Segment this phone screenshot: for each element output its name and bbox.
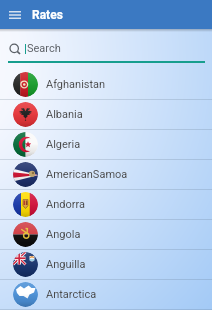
staticText: Angola	[46, 228, 81, 241]
button[interactable]: Albania	[0, 100, 212, 129]
button[interactable]: Algeria	[0, 130, 212, 159]
button[interactable]: Antarctica	[0, 280, 212, 309]
staticText: Search	[27, 42, 61, 55]
button[interactable]: Andorra	[0, 190, 212, 219]
button[interactable]: Open navigation menu	[6, 6, 24, 24]
button[interactable]: Afghanistan	[0, 70, 212, 99]
staticText: Afghanistan	[46, 78, 106, 91]
button[interactable]: Angola	[0, 220, 212, 249]
staticText: Antarctica	[46, 288, 97, 301]
button[interactable]: AmericanSamoa	[0, 160, 212, 189]
staticText: Andorra	[46, 198, 85, 211]
button[interactable]: Anguilla	[0, 250, 212, 279]
staticText: Anguilla	[46, 258, 86, 271]
staticText: Albania	[46, 108, 83, 121]
staticText: AmericanSamoa	[46, 168, 128, 181]
staticText: Rates	[32, 8, 63, 22]
staticText: Algeria	[46, 138, 81, 151]
button[interactable]: Search	[10, 36, 212, 61]
